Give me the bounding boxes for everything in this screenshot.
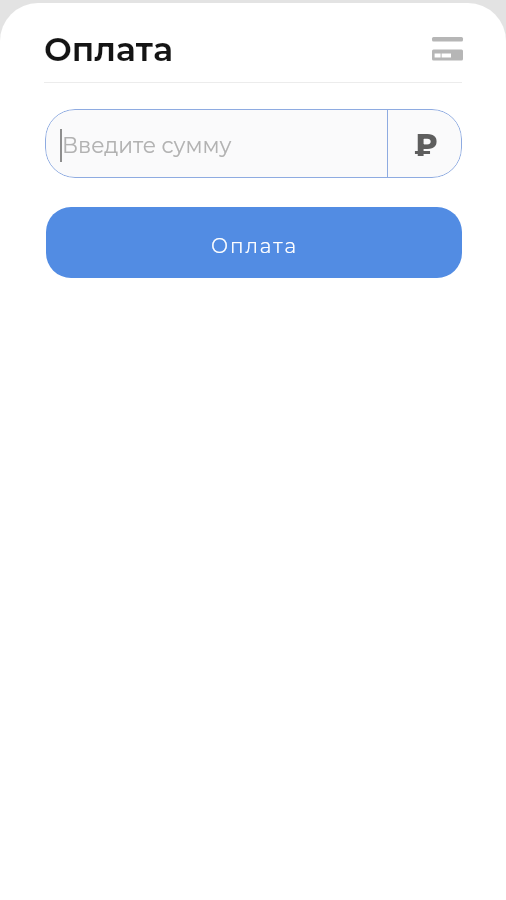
staticText: Оплата [211, 234, 298, 258]
button[interactable]: Введите сумму [45, 109, 462, 178]
staticText: Введите сумму [62, 132, 232, 158]
button[interactable]: Оплата [46, 207, 462, 278]
staticText: ₽ [414, 127, 438, 164]
staticText: Оплата [44, 29, 173, 69]
button[interactable]: Payment cards [419, 26, 475, 72]
